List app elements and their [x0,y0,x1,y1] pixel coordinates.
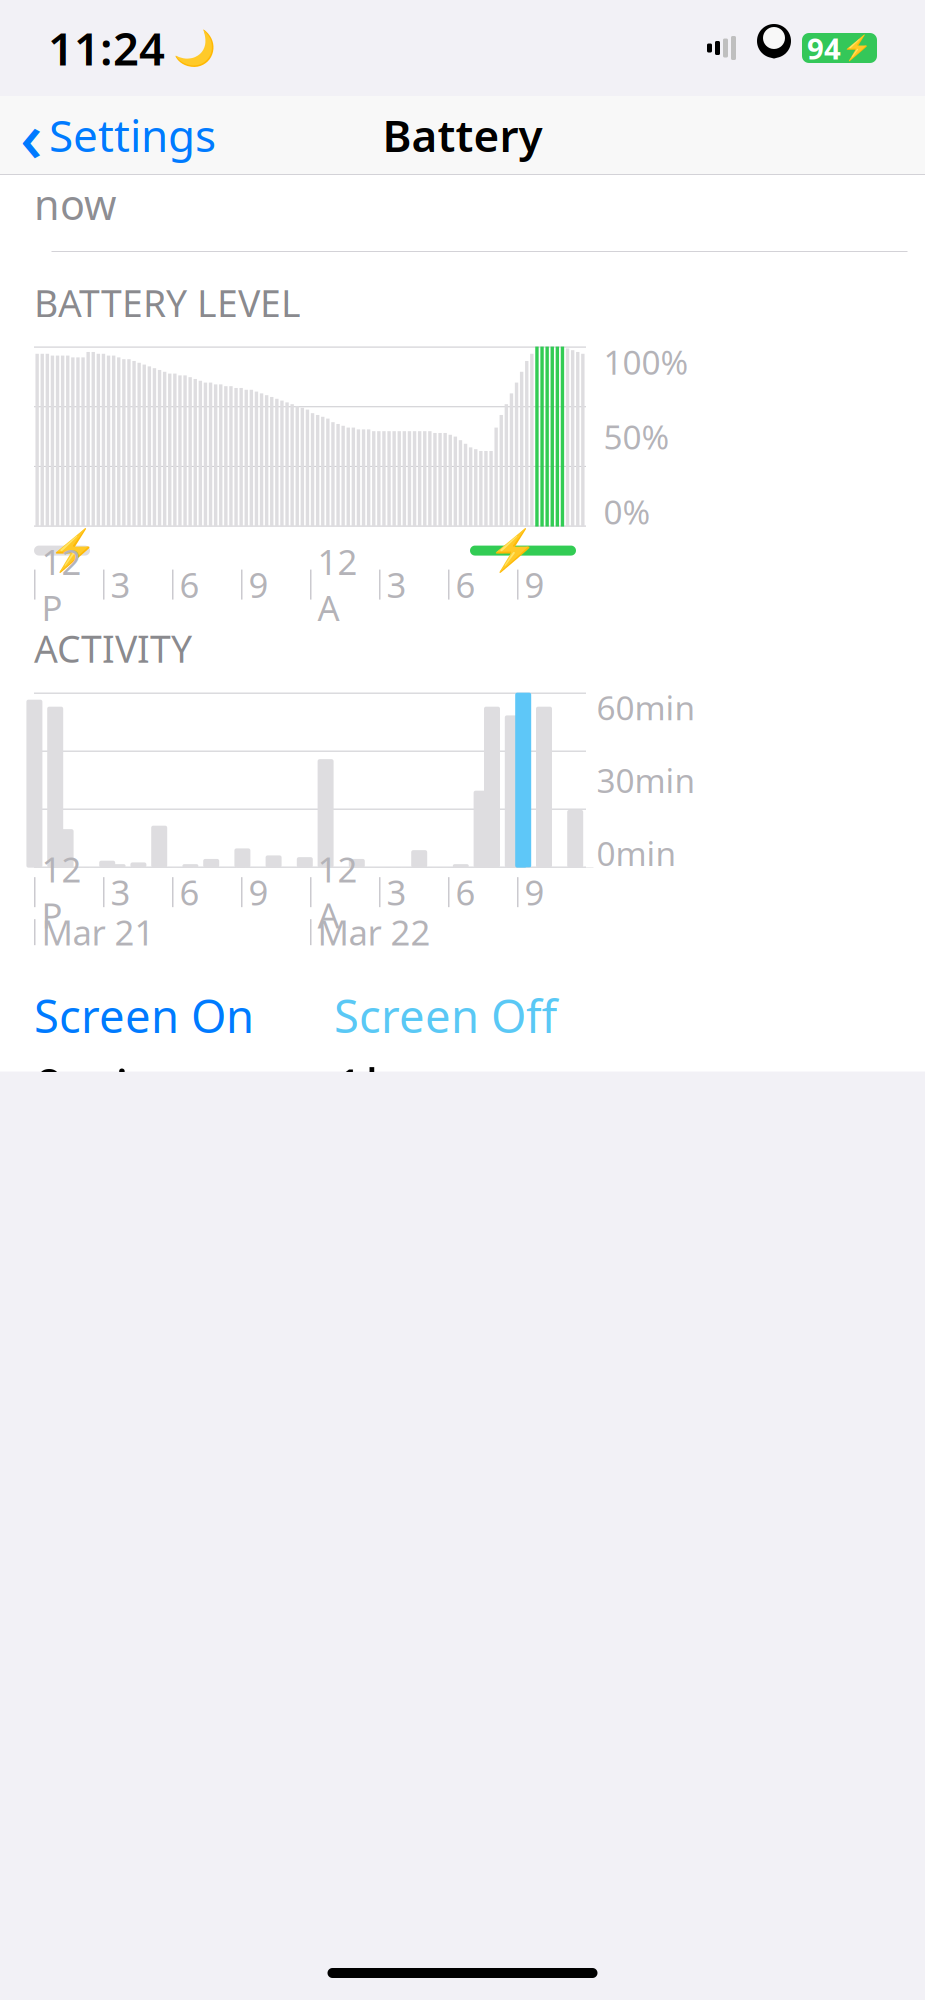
staticText: 12 P [41,538,81,631]
staticText: 12 A [317,846,357,938]
staticText: 3 [386,562,406,608]
staticText: 12 P [41,846,81,938]
staticText: Screen On [34,985,254,1045]
staticText: ACTIVITY [34,624,192,673]
staticText: 60min [596,685,695,729]
staticText: 3 [110,869,130,915]
staticText: Battery [382,106,542,164]
staticText: 0min [34,1051,162,1122]
staticText: 6 [455,869,475,915]
staticText: ⚡ [488,528,538,573]
staticText: now [34,177,116,231]
staticText: 100% [603,340,688,384]
staticText: 11:24 [48,18,165,78]
staticText: Mar 22 [317,909,430,955]
staticText: BATTERY LEVEL [34,278,301,328]
staticText: 0% [603,489,650,534]
staticText: Mar 21 [41,909,154,955]
staticText: 0min [596,831,676,875]
button[interactable]: ‹ [0,83,216,187]
staticText: 9 [524,562,544,608]
staticText: 6 [179,562,199,608]
staticText: 3 [110,562,130,608]
staticText: 🌙 [173,28,216,68]
staticText: 30min [596,758,695,802]
staticText: 6 [455,562,475,608]
staticText: ⚡ [48,528,98,573]
staticText: 9 [248,562,268,608]
staticText: ‹ [20,89,43,181]
staticText: 9 [524,869,544,915]
staticText: 3 [386,869,406,915]
staticText: 50% [603,414,669,459]
staticText: 9 [248,869,268,915]
staticText: 12 A [317,538,357,631]
staticText: 94 [807,28,841,67]
staticText: 1h [334,1051,398,1122]
staticText: Screen Off [334,985,557,1045]
staticText: ⚡ [842,34,872,62]
staticText: Settings [49,106,216,164]
staticText: 6 [179,869,199,915]
